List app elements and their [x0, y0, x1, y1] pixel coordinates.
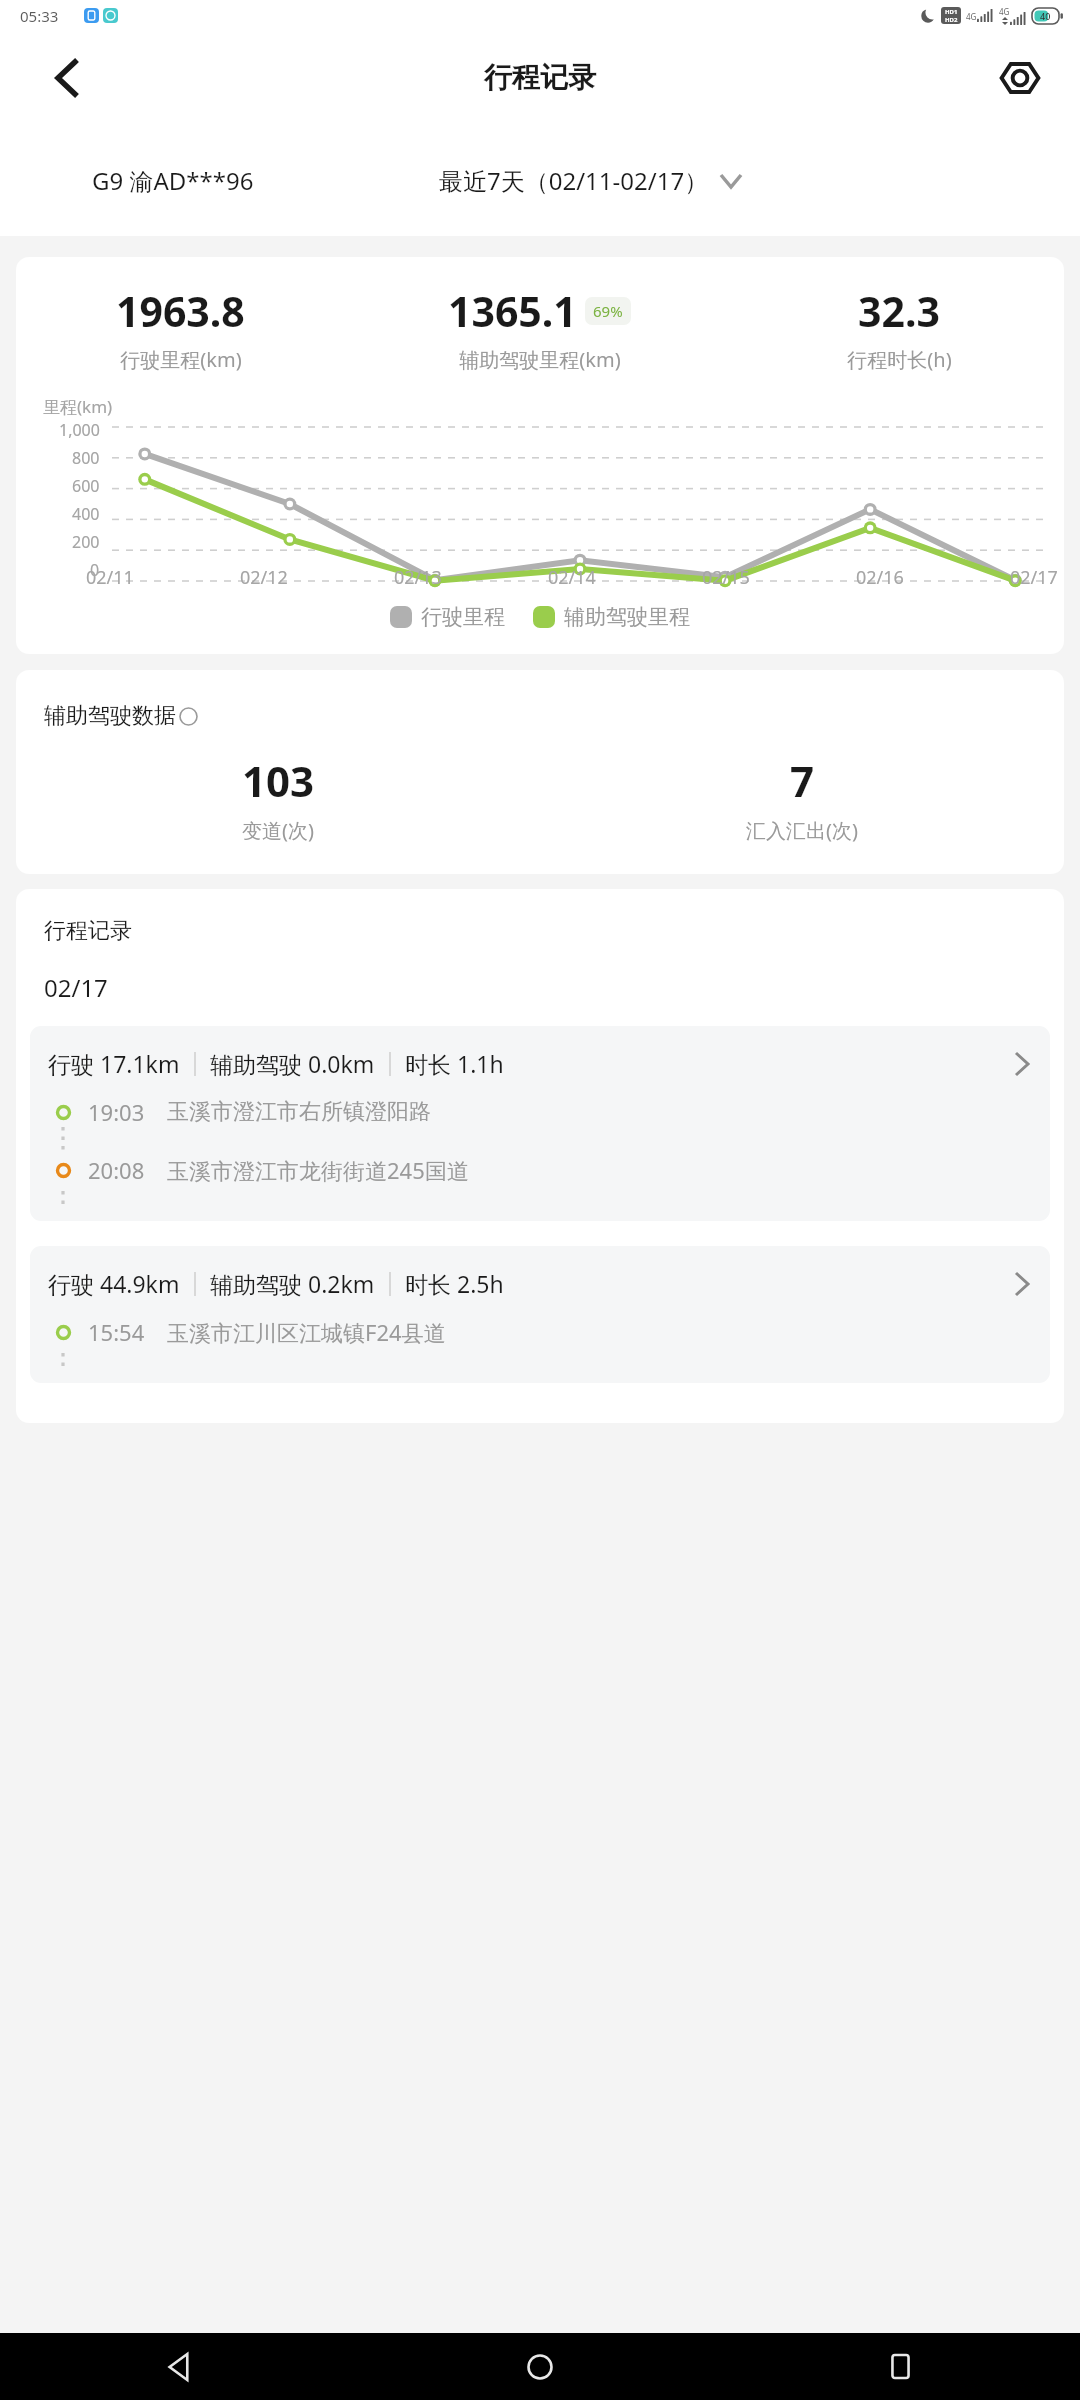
staticText: 05:33	[20, 6, 59, 26]
staticText: 玉溪市澄江市龙街街道245国道	[167, 1155, 469, 1185]
button[interactable]: 辅助驾驶数据	[44, 702, 198, 730]
staticText: 02/12	[240, 565, 288, 590]
staticText: 40	[1040, 10, 1051, 22]
staticText: 行程记录	[44, 917, 132, 945]
staticText: 辅助驾驶 0.2km	[210, 1268, 375, 1299]
staticText: 103	[242, 752, 315, 809]
button[interactable]: Back	[0, 2333, 360, 2400]
staticText: 0	[90, 559, 100, 581]
staticText: 辅助驾驶里程	[564, 604, 690, 630]
staticText: 7	[790, 752, 815, 809]
staticText: 02/16	[856, 565, 904, 590]
staticText: 玉溪市澄江市右所镇澄阳路	[167, 1098, 431, 1126]
staticText: 200	[72, 531, 100, 553]
staticText: 变道(次)	[242, 817, 314, 844]
staticText: 行驶 17.1km	[48, 1048, 180, 1079]
staticText: 02/15	[702, 565, 750, 590]
staticText: 02/17	[44, 971, 108, 1004]
staticText: 02/11	[86, 565, 134, 590]
staticText: 19:03	[88, 1097, 145, 1127]
staticText: 4G	[999, 6, 1010, 17]
staticText: 辅助驾驶 0.0km	[210, 1048, 375, 1079]
staticText: HD2	[945, 16, 958, 24]
button[interactable]: 最近7天（02/11-02/17）	[439, 164, 741, 197]
staticText: 02/14	[548, 565, 596, 590]
staticText: 行驶里程	[421, 604, 505, 630]
staticText: 32.3	[858, 283, 940, 339]
button[interactable]: Back	[40, 52, 92, 104]
staticText: 02/17	[1010, 565, 1058, 590]
button[interactable]: Recents	[720, 2333, 1080, 2400]
staticText: HD1	[945, 8, 958, 16]
staticText: 02/13	[394, 565, 442, 590]
staticText: 行驶里程(km)	[120, 346, 242, 373]
staticText: 辅助驾驶数据	[44, 702, 176, 730]
staticText: 时长 2.5h	[405, 1268, 504, 1299]
staticText: 汇入汇出(次)	[746, 817, 858, 844]
staticText: 1,000	[59, 419, 100, 441]
staticText: 时长 1.1h	[405, 1048, 504, 1079]
staticText: 行程记录	[484, 60, 596, 95]
staticText: 行程时长(h)	[847, 346, 952, 373]
button[interactable]: Home	[360, 2333, 720, 2400]
staticText: 最近7天（02/11-02/17）	[439, 164, 709, 197]
staticText: 600	[72, 475, 100, 497]
button[interactable]: 行驶 44.9km	[30, 1246, 1050, 1383]
staticText: 行驶 44.9km	[48, 1268, 180, 1299]
staticText: 69%	[593, 301, 623, 321]
staticText: 玉溪市江川区江城镇F24县道	[167, 1317, 446, 1347]
button[interactable]: 行驶 17.1km	[30, 1026, 1050, 1221]
staticText: 20:08	[88, 1155, 145, 1185]
staticText: 4G	[966, 11, 977, 22]
staticText: 15:54	[88, 1317, 145, 1347]
staticText: 1365.1	[448, 283, 577, 339]
staticText: 1963.8	[116, 283, 245, 339]
staticText: 里程(km)	[43, 395, 113, 418]
staticText: 辅助驾驶里程(km)	[459, 346, 621, 373]
staticText: 800	[72, 447, 100, 469]
staticText: 400	[72, 503, 100, 525]
button[interactable]: Settings	[992, 50, 1048, 106]
staticText: G9 渝AD***96	[92, 164, 254, 197]
